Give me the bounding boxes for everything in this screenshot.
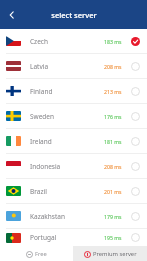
staticText: 201 ms [104,188,122,195]
staticText: Kazakhstan [30,212,104,221]
staticText: 181 ms [104,138,122,145]
button[interactable]: Latvia [0,54,147,79]
staticText: Indonesia [30,162,104,171]
staticText: 208 ms [104,163,122,170]
button[interactable]: Finland [0,79,147,104]
staticText: 179 ms [104,213,122,220]
staticText: Brazil [30,187,104,196]
staticText: Premium server [93,250,137,258]
staticText: Free [35,250,47,258]
staticText: Finland [30,87,104,96]
staticText: select server [51,10,97,20]
staticText: 213 ms [104,88,122,95]
staticText: Ireland [30,137,104,146]
staticText: 208 ms [104,63,122,70]
staticText: Latvia [30,62,104,71]
button[interactable]: Sweden [0,104,147,129]
button[interactable]: Premium server [73,246,147,261]
button[interactable]: Kazakhstan [0,204,147,229]
staticText: 195 ms [104,234,122,241]
button[interactable]: Ireland [0,129,147,154]
button[interactable]: Free [0,246,73,261]
staticText: 183 ms [104,38,122,45]
staticText: Portugal [30,233,104,242]
button[interactable]: Brazil [0,179,147,204]
staticText: Sweden [30,112,104,121]
button[interactable]: Portugal [0,229,147,246]
button[interactable]: Indonesia [0,154,147,179]
staticText: Czech [30,37,104,46]
staticText: 176 ms [104,113,122,120]
button[interactable]: Czech [0,29,147,54]
button[interactable]: Back [0,3,24,27]
